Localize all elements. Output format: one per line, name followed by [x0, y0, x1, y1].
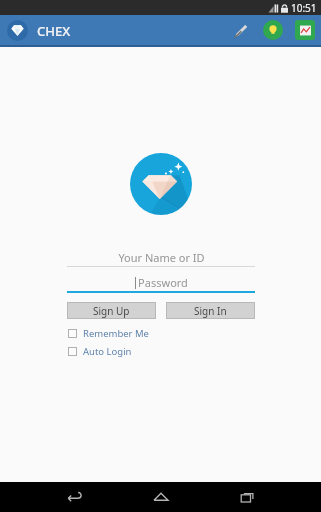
button[interactable]: Chart: [295, 20, 315, 40]
staticText: Auto Login: [83, 345, 132, 358]
button[interactable]: Sign Up: [67, 302, 156, 319]
button[interactable]: Sign In: [166, 302, 255, 319]
staticText: Remember Me: [83, 327, 149, 340]
button[interactable]: Tools: [229, 19, 251, 41]
button[interactable]: Back: [58, 482, 92, 512]
button[interactable]: Password: [67, 274, 255, 293]
staticText: Sign In: [194, 304, 227, 318]
button[interactable]: Tips: [263, 20, 283, 40]
staticText: Your Name or ID: [118, 250, 205, 265]
staticText: 10:51: [291, 1, 317, 15]
staticText: Password: [138, 275, 188, 290]
staticText: CHEX: [37, 22, 71, 40]
button[interactable]: Recent apps: [230, 482, 264, 512]
button[interactable]: CHEX logo: [130, 153, 192, 215]
button[interactable]: Auto Login: [67, 345, 255, 358]
button[interactable]: App logo: [7, 20, 28, 41]
button[interactable]: Your Name or ID: [67, 249, 255, 267]
staticText: Sign Up: [93, 304, 130, 318]
button[interactable]: Home: [144, 482, 178, 512]
button[interactable]: Remember Me: [67, 327, 255, 340]
